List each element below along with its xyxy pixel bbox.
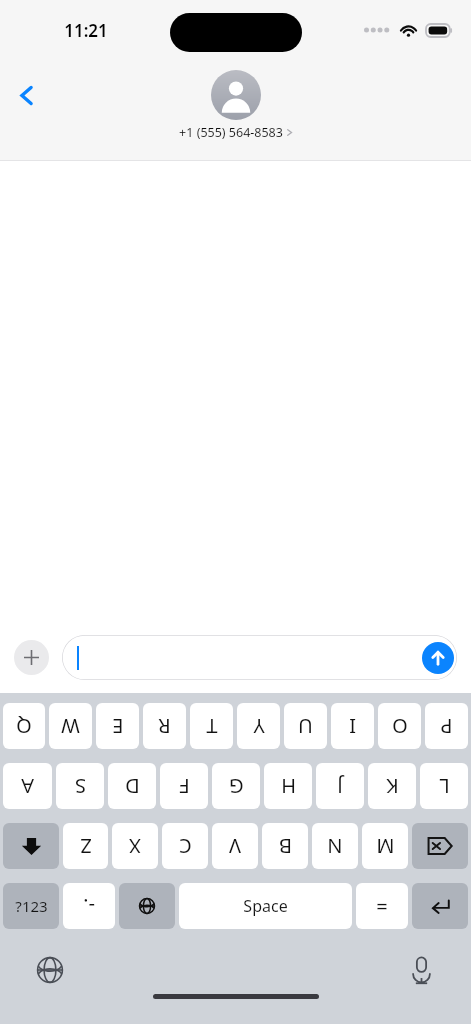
staticText: Z	[80, 833, 92, 860]
staticText: -.	[83, 893, 95, 920]
button[interactable]: E	[96, 703, 139, 749]
staticText: N	[327, 833, 343, 860]
button[interactable]: H	[264, 763, 312, 809]
staticText: Q	[16, 713, 32, 740]
button[interactable]: -.	[63, 883, 115, 929]
staticText: P	[440, 713, 453, 740]
button[interactable]: W	[49, 703, 92, 749]
staticText: V	[229, 833, 241, 860]
button[interactable]: G	[212, 763, 260, 809]
staticText: S	[75, 773, 86, 800]
button[interactable]: ?123	[3, 883, 59, 929]
button[interactable]: F	[160, 763, 208, 809]
button[interactable]: A	[3, 763, 52, 809]
button[interactable]: Send	[422, 642, 454, 674]
staticText: B	[279, 833, 292, 860]
button[interactable]: I	[331, 703, 374, 749]
staticText: =	[376, 893, 388, 920]
button[interactable]: Change keyboard	[119, 883, 175, 929]
staticText: M	[376, 833, 395, 860]
staticText: +1 (555) 564-8583	[179, 124, 283, 141]
button[interactable]: C	[162, 823, 208, 869]
button[interactable]: L	[420, 763, 468, 809]
button[interactable]: Add attachment	[14, 640, 49, 675]
button[interactable]: M	[362, 823, 408, 869]
button[interactable]: Switch keyboard	[29, 949, 71, 991]
staticText: X	[129, 833, 141, 860]
staticText: E	[112, 713, 124, 740]
button[interactable]: D	[108, 763, 156, 809]
button[interactable]: Z	[63, 823, 108, 869]
button[interactable]: B	[262, 823, 308, 869]
staticText: Y	[253, 713, 265, 740]
staticText: U	[298, 713, 313, 740]
staticText: 11:21	[64, 19, 108, 42]
staticText: W	[61, 713, 80, 740]
staticText: T	[206, 713, 218, 740]
staticText: O	[392, 713, 408, 740]
button[interactable]: O	[378, 703, 421, 749]
button[interactable]: N	[312, 823, 358, 869]
staticText: L	[439, 773, 450, 800]
button[interactable]: V	[212, 823, 258, 869]
button[interactable]: K	[368, 763, 416, 809]
button[interactable]: P	[425, 703, 468, 749]
button[interactable]: Shift	[3, 823, 59, 869]
button[interactable]: Return	[412, 883, 468, 929]
button[interactable]: T	[190, 703, 233, 749]
button[interactable]: +1 (555) 564-8583	[179, 70, 293, 141]
button[interactable]: X	[112, 823, 158, 869]
button[interactable]: Y	[237, 703, 280, 749]
button[interactable]: U	[284, 703, 327, 749]
staticText: F	[179, 773, 190, 800]
staticText: Space	[243, 895, 288, 917]
button[interactable]: Backspace	[412, 823, 468, 869]
staticText: K	[386, 773, 399, 800]
button[interactable]: R	[143, 703, 186, 749]
staticText: A	[21, 773, 34, 800]
button[interactable]: Space	[179, 883, 352, 929]
staticText: G	[229, 773, 244, 800]
staticText: C	[179, 833, 192, 860]
button[interactable]: Send	[62, 635, 457, 680]
button[interactable]: =	[356, 883, 408, 929]
button[interactable]: Q	[3, 703, 45, 749]
button[interactable]: S	[56, 763, 104, 809]
button[interactable]: Back	[2, 71, 50, 119]
button[interactable]: J	[316, 763, 364, 809]
staticText: J	[337, 773, 343, 800]
staticText: I	[349, 713, 356, 740]
staticText: D	[125, 773, 140, 800]
button[interactable]: Voice input	[400, 949, 442, 991]
staticText: H	[281, 773, 296, 800]
staticText: R	[158, 713, 171, 740]
staticText: ?123	[15, 896, 48, 916]
